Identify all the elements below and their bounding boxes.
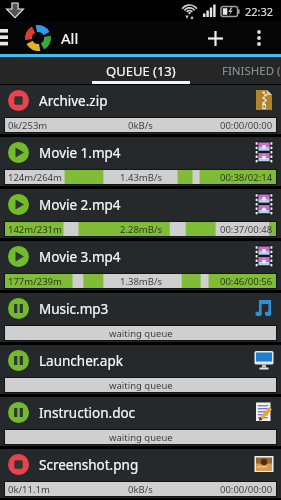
button[interactable]: Movie 2.mp4 bbox=[0, 189, 281, 238]
staticText: 00:46/00:56 bbox=[220, 275, 273, 288]
staticText: 1.38mB/s bbox=[120, 275, 162, 288]
staticText: Movie 1.mp4 bbox=[39, 144, 121, 162]
button[interactable]: Screenshot.png bbox=[0, 449, 281, 498]
button[interactable]: FINISHED ( bbox=[222, 63, 281, 79]
button[interactable]: Instruction.doc bbox=[0, 397, 281, 446]
staticText: 124m/264m bbox=[8, 171, 62, 184]
button[interactable]: Movie 1.mp4 bbox=[0, 137, 281, 186]
staticText: Instruction.doc bbox=[39, 404, 136, 422]
button[interactable]: Movie 3.mp4 bbox=[0, 241, 281, 290]
staticText: 00:00/00:00 bbox=[220, 119, 273, 132]
button[interactable]: Archive.zip bbox=[0, 85, 281, 134]
button[interactable]: Launcher.apk bbox=[0, 345, 281, 394]
button[interactable] bbox=[193, 22, 237, 54]
staticText: Movie 3.mp4 bbox=[39, 248, 121, 266]
staticText: 0kB/s bbox=[128, 119, 153, 132]
staticText: 0kB/s bbox=[128, 483, 153, 496]
staticText: 0k/11.1m bbox=[8, 483, 50, 496]
staticText: Launcher.apk bbox=[39, 352, 123, 370]
button[interactable]: All bbox=[0, 22, 79, 54]
staticText: FINISHED ( bbox=[222, 63, 281, 79]
staticText: 1.43mB/s bbox=[120, 171, 162, 184]
staticText: 00:00/00:00 bbox=[220, 483, 273, 496]
staticText: waiting queue bbox=[109, 379, 173, 392]
staticText: QUEUE (13) bbox=[106, 62, 176, 80]
button[interactable]: QUEUE (13) bbox=[106, 62, 176, 80]
staticText: 00:37/00:48 bbox=[220, 223, 273, 236]
staticText: All bbox=[61, 28, 79, 48]
staticText: Archive.zip bbox=[39, 92, 108, 110]
staticText: Music.mp3 bbox=[39, 300, 109, 318]
button[interactable]: Music.mp3 bbox=[0, 293, 281, 342]
staticText: 142m/231m bbox=[8, 223, 62, 236]
staticText: Movie 2.mp4 bbox=[39, 196, 121, 214]
staticText: 177m/239m bbox=[8, 275, 62, 288]
staticText: 00:38/02:14 bbox=[220, 171, 273, 184]
staticText: 0k/253m bbox=[8, 119, 48, 132]
staticText: waiting queue bbox=[109, 327, 173, 340]
staticText: waiting queue bbox=[109, 431, 173, 444]
staticText: 22:32 bbox=[245, 4, 274, 19]
button[interactable] bbox=[237, 22, 281, 54]
staticText: Screenshot.png bbox=[39, 456, 139, 474]
staticText: 2.28mB/s bbox=[120, 223, 162, 236]
